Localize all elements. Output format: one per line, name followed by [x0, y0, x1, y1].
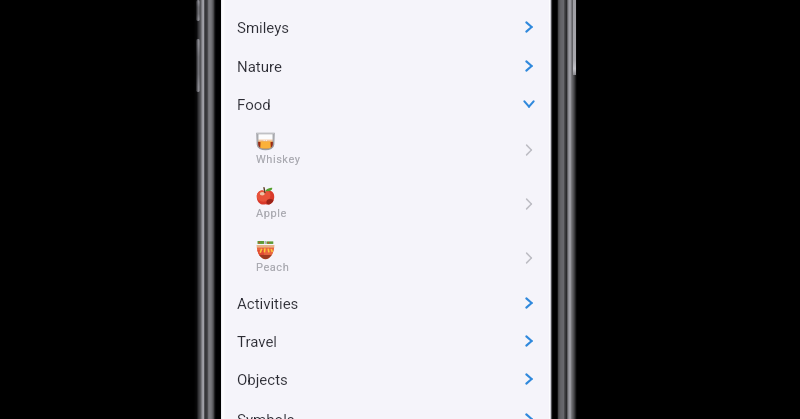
staticText: Symbols — [237, 411, 295, 419]
other: Collapse — [521, 96, 537, 112]
other: Expand — [521, 295, 537, 311]
other: Expand — [521, 411, 537, 419]
other: Expand — [521, 58, 537, 74]
other: Expand — [521, 196, 537, 212]
staticText: Nature — [237, 58, 282, 76]
other: Expand — [521, 333, 537, 349]
other: Expand — [521, 371, 537, 387]
staticText: Apple — [256, 207, 287, 220]
staticText: Peach — [256, 261, 290, 274]
other: Expand — [521, 250, 537, 266]
button[interactable]: Apple — [221, 177, 550, 225]
staticText: Whiskey — [256, 153, 301, 166]
button[interactable]: Food — [221, 80, 550, 118]
button[interactable]: Objects — [221, 355, 550, 393]
staticText: Travel — [237, 333, 278, 351]
staticText: Objects — [237, 371, 288, 389]
button[interactable]: Whiskey — [221, 123, 550, 171]
button[interactable]: Symbols — [221, 395, 550, 419]
staticText: Smileys — [237, 19, 290, 37]
button[interactable]: Smileys — [221, 3, 550, 41]
other: Expand — [521, 19, 537, 35]
button[interactable]: Activities — [221, 279, 550, 317]
button[interactable]: Peach — [221, 231, 550, 279]
button[interactable]: Nature — [221, 42, 550, 80]
other: Expand — [521, 142, 537, 158]
staticText: Activities — [237, 295, 299, 313]
button[interactable]: Travel — [221, 317, 550, 355]
staticText: Food — [237, 96, 271, 114]
